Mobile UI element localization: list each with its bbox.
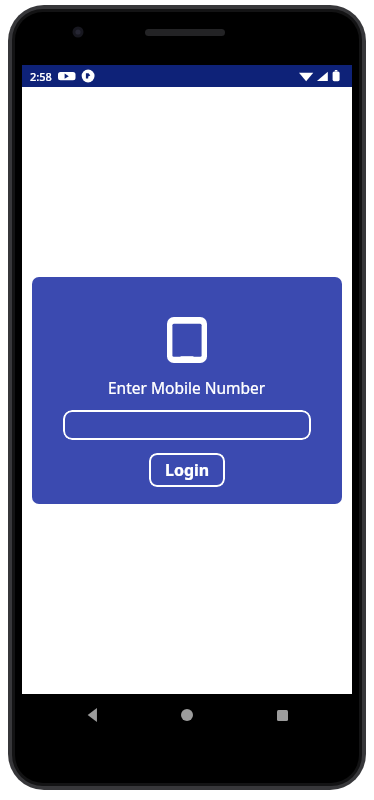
button[interactable]: Login xyxy=(149,453,225,487)
button[interactable]: Enter Mobile Number xyxy=(32,277,342,504)
button[interactable]: Recent apps xyxy=(258,694,306,736)
staticText: Login xyxy=(165,459,210,481)
button[interactable]: Mobile number input xyxy=(63,410,311,440)
staticText: 2:58 xyxy=(30,69,52,84)
button[interactable]: Back xyxy=(69,694,117,736)
staticText: Enter Mobile Number xyxy=(108,377,266,398)
button[interactable]: Home xyxy=(163,694,211,736)
